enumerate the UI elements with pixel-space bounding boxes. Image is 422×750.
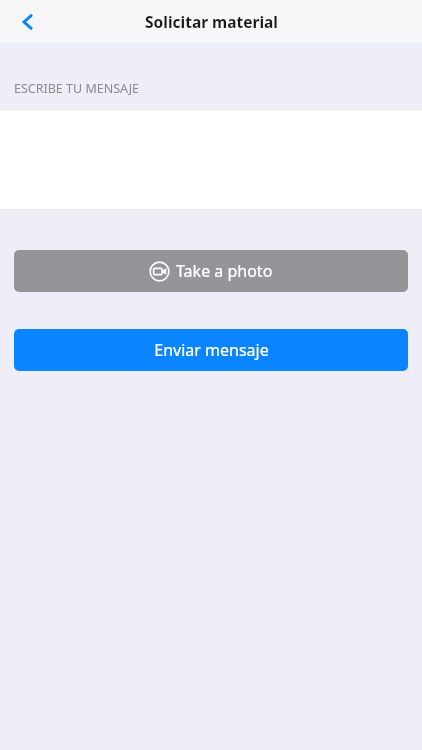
staticText: Enviar mensaje [154, 339, 269, 361]
button[interactable] [0, 109, 422, 210]
staticText: ESCRIBE TU MENSAJE [14, 80, 140, 97]
staticText: Take a photo [176, 260, 273, 282]
staticText: Solicitar material [145, 11, 278, 32]
button[interactable]: Back [0, 0, 56, 43]
button[interactable]: Enviar mensaje [14, 329, 408, 371]
button[interactable]: Take a photo [14, 250, 408, 292]
